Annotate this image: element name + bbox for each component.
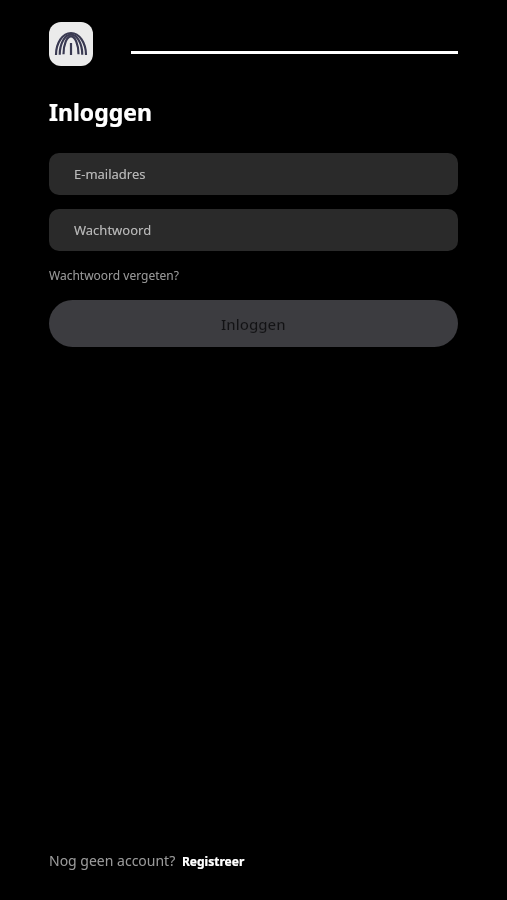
button[interactable]: Wachtwoord: [49, 209, 458, 251]
button[interactable]: Wachtwoord vergeten?: [49, 267, 179, 283]
staticText: Nog geen account?: [49, 851, 176, 870]
staticText: Inloggen: [49, 96, 152, 127]
button[interactable]: Registreer: [182, 853, 245, 869]
staticText: Inloggen: [221, 314, 286, 334]
staticText: E-mailadres: [74, 165, 146, 183]
staticText: Registreer: [182, 853, 245, 869]
button[interactable]: E-mailadres: [49, 153, 458, 195]
button[interactable]: Inloggen: [49, 300, 458, 347]
staticText: Wachtwoord vergeten?: [49, 267, 179, 283]
staticText: Wachtwoord: [74, 221, 152, 239]
other: App logo: [49, 22, 93, 66]
